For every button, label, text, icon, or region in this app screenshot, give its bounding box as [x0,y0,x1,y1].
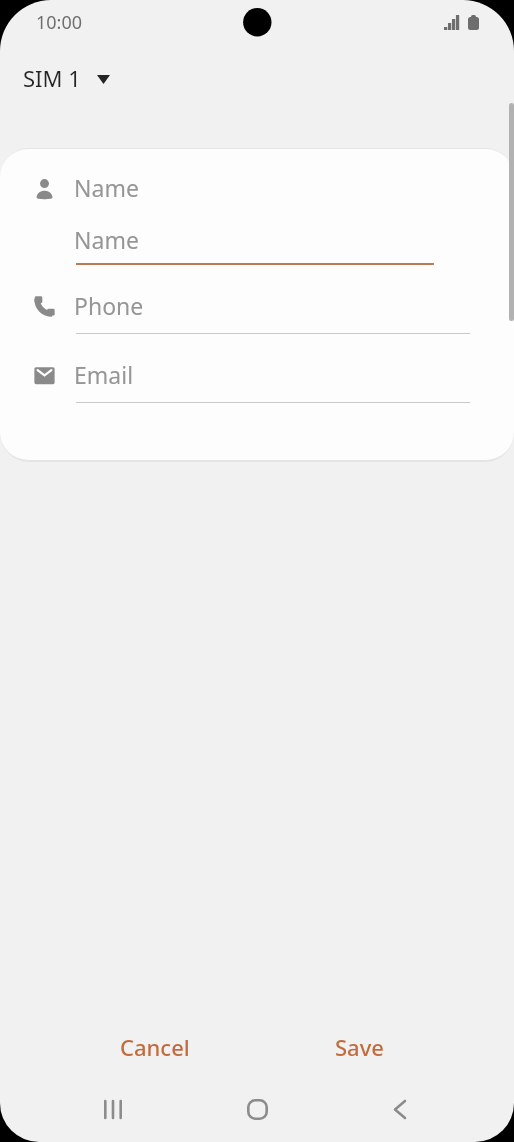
staticText: 10:00 [36,10,83,35]
button[interactable]: Back [362,1085,438,1142]
button[interactable]: Save [300,1023,418,1071]
staticText: Email [74,359,134,390]
button[interactable]: Email [0,348,514,404]
button[interactable]: Home [219,1085,295,1142]
button[interactable]: Cancel [86,1023,224,1071]
staticText: Name [74,172,139,203]
button[interactable]: Name [0,159,514,269]
staticText: Save [335,1032,384,1062]
staticText: Phone [74,290,144,321]
staticText: Cancel [120,1032,190,1062]
staticText: SIM 1 [23,63,81,93]
button[interactable]: SIM 1 [0,56,110,100]
button[interactable]: Recents [75,1085,151,1142]
staticText: Name [74,224,139,255]
button[interactable]: Phone [0,279,514,335]
